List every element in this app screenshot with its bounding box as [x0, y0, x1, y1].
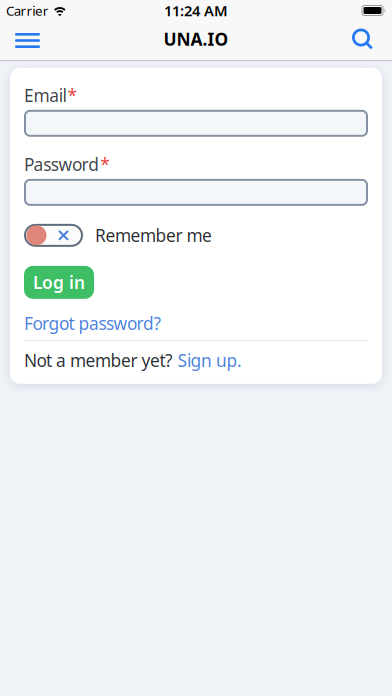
- staticText: 11:24 AM: [164, 1, 228, 20]
- button[interactable]: Forgot password?: [24, 312, 161, 335]
- staticText: UNA.IO: [163, 27, 228, 50]
- staticText: Carrier: [6, 2, 49, 19]
- staticText: Password: [24, 153, 99, 176]
- staticText: *: [100, 153, 110, 176]
- staticText: Forgot password?: [24, 312, 161, 335]
- staticText: Sign up.: [177, 349, 242, 372]
- staticText: Email: [24, 84, 66, 107]
- staticText: Remember me: [95, 224, 212, 247]
- button[interactable]: Search: [352, 29, 374, 51]
- button[interactable]: Sign up.: [177, 349, 242, 372]
- button[interactable]: Menu: [15, 27, 40, 54]
- staticText: *: [67, 84, 77, 107]
- staticText: Not a member yet?: [24, 349, 177, 372]
- staticText: Log in: [33, 271, 85, 294]
- button[interactable]: Remember me: [24, 224, 83, 247]
- button[interactable]: Log in: [24, 266, 94, 299]
